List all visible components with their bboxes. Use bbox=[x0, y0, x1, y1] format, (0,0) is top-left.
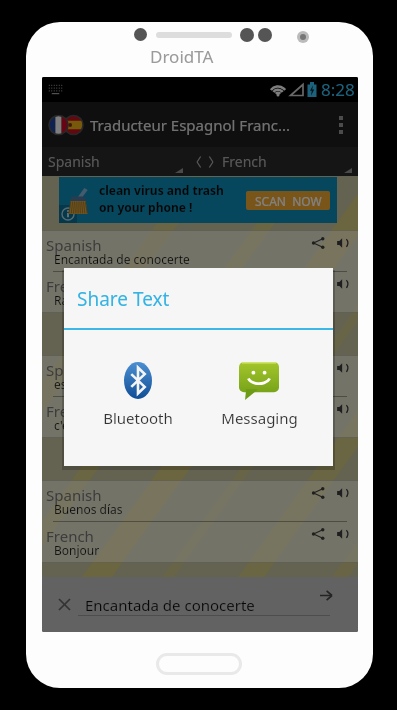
staticText: DroidTA bbox=[150, 45, 214, 68]
staticText: c'est bbox=[54, 417, 79, 433]
staticText: Bluetooth bbox=[103, 408, 173, 428]
button[interactable]: French bbox=[42, 522, 358, 562]
staticText: clean virus and trash bbox=[99, 182, 224, 198]
button[interactable]: Speak bbox=[336, 402, 350, 416]
button[interactable]: Speak bbox=[336, 527, 350, 541]
staticText: French bbox=[222, 152, 267, 171]
button[interactable]: Spanish bbox=[42, 356, 358, 396]
button[interactable]: Speak bbox=[336, 277, 350, 291]
staticText: Spanish bbox=[46, 485, 102, 505]
button[interactable]: Spanish bbox=[42, 147, 190, 176]
button[interactable]: French bbox=[42, 272, 358, 312]
button[interactable]: Speak bbox=[336, 236, 350, 250]
button[interactable]: More options bbox=[324, 102, 358, 147]
button[interactable]: Bluetooth bbox=[98, 361, 178, 428]
button[interactable]: Share bbox=[311, 486, 325, 500]
button[interactable]: Swap languages bbox=[190, 147, 220, 176]
button[interactable]: Spanish bbox=[42, 231, 358, 271]
button[interactable]: Translate bbox=[304, 580, 348, 610]
staticText: SCAN NOW bbox=[255, 193, 322, 209]
button[interactable]: Share bbox=[311, 236, 325, 250]
staticText: French bbox=[46, 401, 94, 421]
staticText: Share Text bbox=[77, 286, 170, 312]
staticText: French bbox=[46, 526, 94, 546]
staticText: Traducteur Espagnol Franc... bbox=[90, 115, 290, 135]
button[interactable]: clean virus and trash bbox=[59, 177, 337, 223]
button[interactable]: French bbox=[220, 147, 358, 176]
staticText: 8:28 bbox=[321, 78, 355, 101]
staticText: Buenos días bbox=[54, 501, 123, 517]
staticText: Bonjour bbox=[54, 542, 100, 558]
staticText: Encantada de conocerte bbox=[85, 595, 255, 615]
staticText: Ravi de vous rencontrer bbox=[54, 292, 188, 308]
button[interactable]: SCAN NOW bbox=[246, 191, 330, 210]
button[interactable]: Speak bbox=[336, 361, 350, 375]
staticText: on your phone ! bbox=[99, 199, 193, 215]
staticText: Spanish bbox=[46, 235, 102, 255]
button[interactable]: Speak bbox=[336, 486, 350, 500]
button[interactable]: French bbox=[42, 397, 358, 437]
staticText: Spanish bbox=[46, 360, 102, 380]
staticText: French bbox=[46, 276, 94, 296]
staticText: Encantada de conocerte bbox=[54, 251, 190, 267]
staticText: estoy bbox=[54, 376, 84, 392]
button[interactable]: Share bbox=[311, 527, 325, 541]
button[interactable]: Messaging bbox=[219, 361, 299, 428]
staticText: Messaging bbox=[221, 408, 298, 428]
button[interactable]: Spanish bbox=[42, 481, 358, 521]
staticText: Spanish bbox=[48, 152, 100, 171]
button[interactable]: Clear bbox=[52, 592, 76, 616]
